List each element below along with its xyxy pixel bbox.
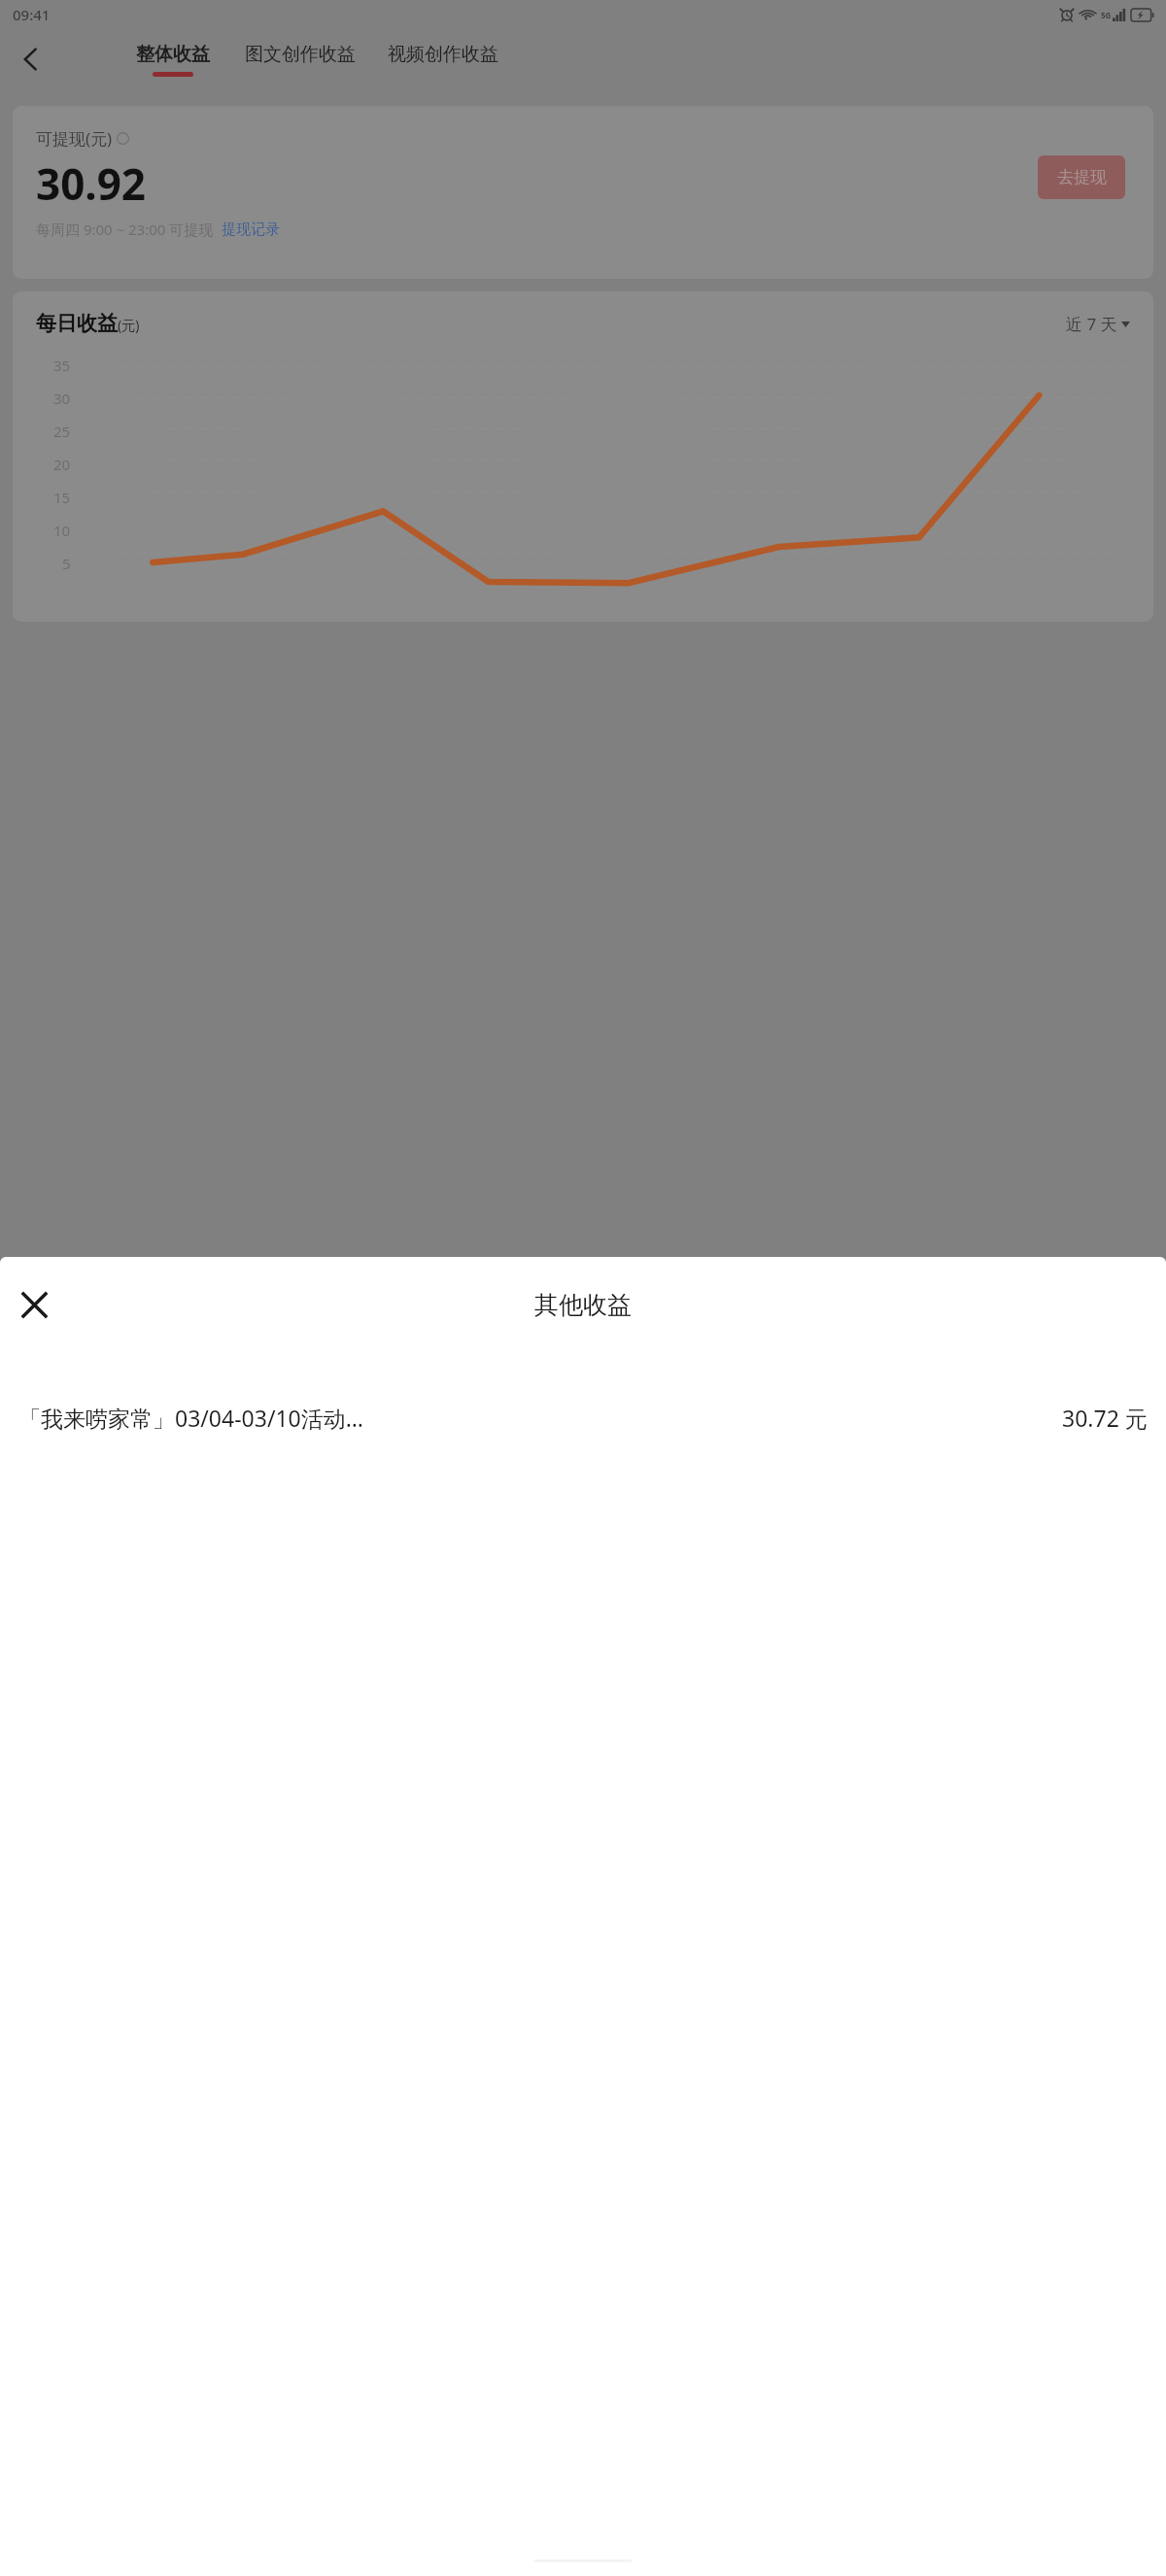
staticText: 每周四 9:00 ~ 23:00 可提现 bbox=[36, 220, 214, 239]
staticText: 25 bbox=[53, 422, 71, 441]
staticText: 近 7 天 bbox=[1066, 313, 1117, 335]
staticText: 35 bbox=[53, 356, 71, 375]
button[interactable]: 整体收益 bbox=[136, 41, 210, 79]
staticText: 30.92 bbox=[36, 154, 147, 213]
staticText: 5 bbox=[62, 554, 71, 573]
staticText: 图文创作收益 bbox=[245, 43, 356, 66]
staticText: 30 bbox=[53, 389, 71, 408]
staticText: (元) bbox=[118, 316, 140, 334]
button[interactable]: 视频创作收益 bbox=[388, 41, 498, 79]
button[interactable]: 去提现 bbox=[1038, 155, 1125, 199]
button[interactable]: 关闭 bbox=[10, 1280, 58, 1329]
button[interactable]: 返回 bbox=[6, 34, 56, 85]
staticText: 5G bbox=[1101, 10, 1112, 20]
staticText: 「我来唠家常」03/04-03/10活动… bbox=[18, 1403, 363, 1433]
staticText: 20 bbox=[53, 455, 71, 474]
staticText: 其他收益 bbox=[534, 1290, 632, 1320]
staticText: 30.72 元 bbox=[1062, 1403, 1148, 1433]
staticText: 去提现 bbox=[1057, 167, 1107, 187]
staticText: 视频创作收益 bbox=[388, 43, 498, 66]
staticText: 09:41 bbox=[13, 5, 51, 24]
staticText: 整体收益 bbox=[136, 43, 210, 66]
button[interactable]: 「我来唠家常」03/04-03/10活动… bbox=[0, 1383, 1166, 1451]
button[interactable]: 图文创作收益 bbox=[245, 41, 356, 79]
button[interactable]: 提现记录 bbox=[222, 220, 280, 239]
staticText: 可提现(元) bbox=[36, 127, 113, 150]
button[interactable]: 近 7 天 bbox=[1066, 313, 1130, 335]
staticText: 提现记录 bbox=[222, 220, 280, 239]
staticText: 15 bbox=[53, 488, 71, 507]
staticText: 每日收益 bbox=[36, 311, 118, 336]
staticText: 10 bbox=[53, 521, 71, 540]
